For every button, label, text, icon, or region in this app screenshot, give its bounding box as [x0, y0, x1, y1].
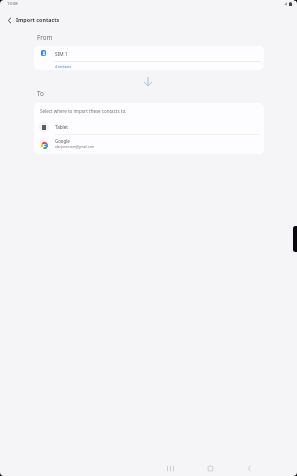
button[interactable]: Tablet: [34, 119, 264, 135]
staticText: Select where to import these contacts to…: [40, 108, 127, 114]
staticText: Google: [55, 138, 70, 144]
button[interactable]: Back: [242, 461, 257, 476]
button[interactable]: Google: [34, 135, 264, 154]
staticText: To: [37, 89, 44, 98]
button[interactable]: SIM 1: [34, 46, 264, 70]
button[interactable]: Recent apps: [163, 461, 178, 476]
staticText: Import contacts: [16, 16, 60, 23]
staticText: alanjones.wm@gmail.com: [55, 145, 95, 149]
staticText: SIM 1: [55, 51, 68, 58]
button[interactable]: Edge panel: [293, 226, 297, 252]
staticText: 10:08: [7, 1, 18, 7]
button[interactable]: Navigate up: [2, 13, 16, 27]
staticText: 4 contacts: [55, 64, 72, 69]
button[interactable]: Home: [203, 461, 218, 476]
staticText: Tablet: [55, 124, 69, 130]
staticText: From: [37, 33, 53, 42]
